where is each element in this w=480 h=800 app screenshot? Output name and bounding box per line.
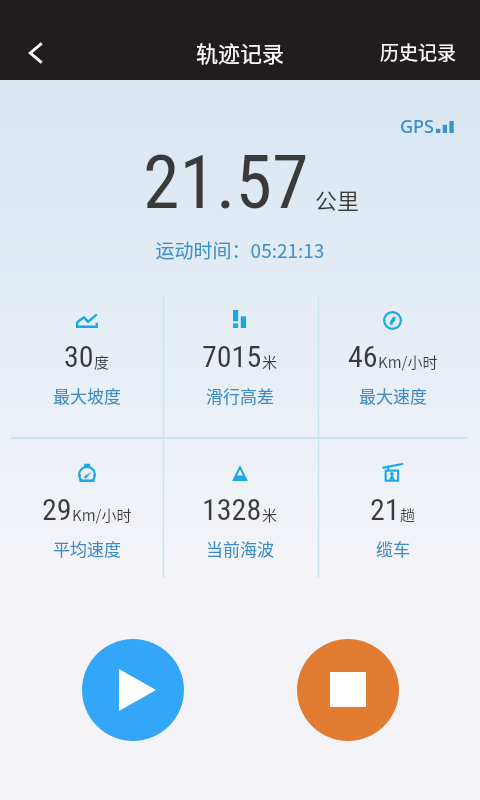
staticText: 29 xyxy=(42,492,72,527)
staticText: 轨迹记录 xyxy=(0,36,480,68)
staticText: 公里 xyxy=(315,183,360,215)
button[interactable]: 46 xyxy=(316,296,469,438)
button[interactable]: 29 xyxy=(11,449,163,591)
staticText: 滑行高差 xyxy=(206,383,274,408)
staticText: 7015 xyxy=(202,339,262,374)
staticText: 平均速度 xyxy=(53,536,121,561)
button[interactable]: 1328 xyxy=(163,449,316,591)
staticText: GPS xyxy=(400,114,434,139)
button[interactable]: Back xyxy=(12,29,60,77)
button[interactable]: 21 xyxy=(316,449,469,591)
staticText: 缆车 xyxy=(376,536,410,561)
button[interactable]: Start xyxy=(82,639,184,741)
button[interactable]: 历史记录 xyxy=(360,28,480,76)
staticText: 1328 xyxy=(202,492,262,527)
staticText: 米 xyxy=(262,351,278,373)
staticText: 运动时间：05:21:13 xyxy=(0,236,480,264)
staticText: 历史记录 xyxy=(380,38,457,66)
staticText: 当前海波 xyxy=(206,536,274,561)
button[interactable]: 7015 xyxy=(163,296,316,438)
staticText: 最大坡度 xyxy=(53,383,121,408)
staticText: 21.57 xyxy=(143,139,309,226)
staticText: 46 xyxy=(348,339,378,374)
staticText: 度 xyxy=(94,351,110,373)
staticText: 趟 xyxy=(400,504,416,526)
staticText: 最大速度 xyxy=(359,383,427,408)
staticText: 30 xyxy=(64,339,94,374)
staticText: Km/小时 xyxy=(72,504,132,526)
button[interactable]: 30 xyxy=(11,296,163,438)
staticText: Km/小时 xyxy=(378,351,438,373)
staticText: 米 xyxy=(262,504,278,526)
button[interactable]: Stop xyxy=(297,639,399,741)
staticText: 21 xyxy=(370,492,400,527)
